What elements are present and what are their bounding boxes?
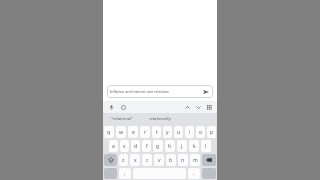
staticText: r [144, 129, 147, 136]
button[interactable]: k [189, 140, 199, 152]
staticText: b [169, 157, 173, 164]
staticText: z [122, 157, 125, 164]
staticText: . [193, 170, 195, 177]
staticText: m [193, 157, 198, 164]
staticText: n [181, 157, 185, 164]
button[interactable]: f [142, 140, 151, 152]
staticText: a [112, 143, 115, 150]
button[interactable]: c [142, 154, 152, 166]
button[interactable]: n [178, 154, 188, 166]
staticText: l [205, 143, 207, 150]
staticText: g [156, 143, 160, 150]
button[interactable]: Previous [183, 103, 191, 111]
staticText: h [168, 143, 172, 150]
button[interactable]: l [201, 140, 211, 152]
staticText: k [193, 143, 196, 150]
staticText: i [189, 129, 191, 136]
staticText: q [107, 129, 111, 136]
button[interactable]: "relational" [103, 113, 141, 125]
button[interactable]: h [165, 140, 175, 152]
staticText: f [146, 143, 148, 150]
button[interactable]: Symbols [104, 168, 117, 179]
staticText: w [119, 129, 123, 136]
button[interactable]: u [174, 126, 183, 138]
button[interactable]: Stickers [119, 103, 127, 111]
button[interactable]: g [153, 140, 163, 152]
button[interactable]: b [166, 154, 176, 166]
staticText: s [123, 143, 126, 150]
staticText: x [134, 157, 137, 164]
staticText: Inflation and interest rate relations [110, 89, 199, 94]
button[interactable]: Next [194, 103, 202, 111]
button[interactable]: x [130, 154, 140, 166]
button[interactable]: Inflation and interest rate relations [107, 85, 213, 98]
button[interactable]: v [154, 154, 164, 166]
button[interactable]: relationally [141, 113, 179, 125]
staticText: d [134, 143, 138, 150]
staticText: , [124, 170, 126, 177]
staticText: v [158, 157, 161, 164]
button[interactable]: w [116, 126, 126, 138]
button[interactable]: e [128, 126, 138, 138]
staticText: p [210, 129, 214, 136]
button[interactable]: p [207, 126, 216, 138]
button[interactable]: Shift [104, 154, 117, 166]
staticText: "relational" [111, 116, 133, 122]
button[interactable]: o [196, 126, 205, 138]
button[interactable]: . [188, 168, 200, 179]
staticText: o [199, 129, 203, 136]
button[interactable]: Enter [202, 168, 216, 179]
button[interactable]: i [185, 126, 194, 138]
button[interactable]: q [104, 126, 114, 138]
staticText: u [177, 129, 181, 136]
staticText: j [181, 143, 183, 150]
staticText: c [146, 157, 149, 164]
staticText: relationally [149, 116, 171, 122]
button[interactable]: m [190, 154, 200, 166]
staticText: e [132, 129, 135, 136]
button[interactable]: r [140, 126, 150, 138]
button[interactable]: s [120, 140, 129, 152]
button[interactable]: z [119, 154, 128, 166]
button[interactable]: y [163, 126, 172, 138]
button[interactable]: a [109, 140, 118, 152]
button[interactable]: j [177, 140, 187, 152]
button[interactable]: Keyboard layout [205, 103, 213, 111]
button[interactable]: t [152, 126, 161, 138]
staticText: y [166, 129, 169, 136]
button[interactable]: Send [201, 87, 210, 96]
button[interactable]: , [119, 168, 131, 179]
button[interactable]: Backspace [202, 154, 216, 166]
button[interactable]: d [131, 140, 140, 152]
staticText: t [156, 129, 158, 136]
button[interactable]: Voice input [107, 103, 115, 111]
